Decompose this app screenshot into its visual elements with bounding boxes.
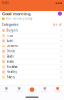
staticText: See all (53, 23, 62, 26)
staticText: Free delivery today (6, 17, 32, 20)
staticText: Desserts (6, 44, 17, 48)
button[interactable]: Salads (0, 54, 64, 59)
staticText: 9:41 (2, 1, 9, 5)
button[interactable]: Add (26, 87, 38, 92)
button[interactable]: Healthy (0, 70, 64, 75)
button[interactable]: Snacks (0, 59, 64, 64)
button[interactable]: Profile (51, 87, 64, 92)
staticText: Salads (6, 55, 13, 58)
button[interactable]: Pizza (0, 33, 64, 38)
button[interactable]: Sushi (0, 38, 64, 44)
button[interactable]: Burgers (0, 28, 64, 33)
button[interactable]: Drinks (0, 49, 64, 54)
staticText: Profile (55, 90, 60, 92)
staticText: Pizza (6, 34, 12, 37)
button[interactable]: Orders (38, 87, 51, 92)
staticText: Breakfast (6, 65, 17, 69)
button[interactable]: See all (53, 23, 62, 26)
staticText: Drinks (6, 49, 14, 53)
button[interactable]: Free delivery today (0, 16, 64, 21)
button[interactable]: Search (13, 87, 26, 92)
staticText: Home (4, 90, 8, 92)
button[interactable]: Breakfast (0, 64, 64, 70)
staticText: Categories (2, 23, 18, 26)
staticText: Bakery (6, 75, 14, 79)
button[interactable]: Bakery (0, 75, 64, 80)
staticText: Orders (42, 90, 48, 92)
staticText: Snacks (6, 60, 13, 63)
staticText: Healthy (6, 70, 16, 74)
staticText: Burgers (6, 29, 17, 32)
button[interactable]: Home (0, 87, 13, 92)
staticText: Sushi (6, 39, 13, 43)
staticText: Good morning (2, 11, 31, 16)
staticText: Search (16, 90, 22, 92)
button[interactable]: Desserts (0, 44, 64, 49)
button[interactable]: Profile (58, 11, 62, 16)
